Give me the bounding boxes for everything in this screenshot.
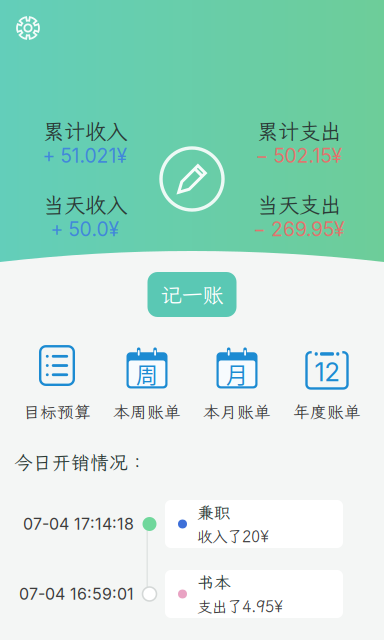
staticText: − 502.15¥ (255, 144, 342, 167)
staticText: 累计支出 (257, 117, 341, 145)
staticText: 年度账单 (293, 401, 361, 423)
staticText: 支出了4.95¥ (197, 596, 283, 617)
button[interactable]: 兼职 (165, 500, 343, 548)
button[interactable]: Add record (161, 148, 223, 210)
button[interactable]: 月 (192, 344, 282, 424)
staticText: 12 (314, 356, 339, 387)
staticText: 目标预算 (23, 401, 91, 423)
staticText: + 51.021¥ (42, 144, 127, 167)
staticText: − 269.95¥ (253, 218, 345, 241)
staticText: 书本 (197, 571, 231, 593)
button[interactable]: 周 (102, 344, 192, 424)
button[interactable]: 目标预算 (12, 344, 102, 424)
button[interactable]: 书本 (165, 570, 343, 618)
button[interactable]: 12 (282, 344, 372, 424)
staticText: 07-04 17:14:18 (23, 514, 134, 534)
staticText: 记一账 (160, 280, 223, 309)
staticText: 累计收入 (43, 117, 127, 145)
staticText: 本月账单 (203, 401, 271, 423)
staticText: 07-04 16:59:01 (19, 584, 134, 604)
staticText: 兼职 (197, 501, 231, 523)
staticText: 本周账单 (113, 401, 181, 423)
staticText: + 50.0¥ (50, 218, 119, 241)
staticText: 收入了20¥ (197, 526, 269, 547)
button[interactable]: 记一账 (147, 272, 236, 317)
button[interactable]: Settings (6, 6, 50, 50)
staticText: 月 (226, 357, 248, 389)
staticText: 今日开销情况： (14, 450, 147, 475)
staticText: 当天支出 (257, 190, 341, 219)
staticText: 周 (136, 357, 158, 389)
staticText: 当天收入 (43, 190, 127, 219)
